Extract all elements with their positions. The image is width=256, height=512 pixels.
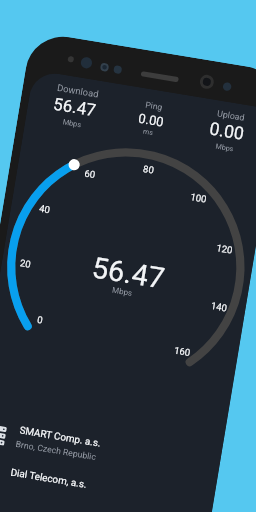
staticText: 140 <box>210 300 228 313</box>
staticText: Mbps <box>62 117 82 129</box>
staticText: 56.47 <box>52 94 97 120</box>
staticText: 56.47 <box>89 250 167 296</box>
staticText: Brno, Czech Republic <box>14 439 97 462</box>
staticText: 0.00 <box>137 111 165 130</box>
staticText: Dial Telecom, a.s. <box>10 466 87 491</box>
staticText: 0.00 <box>208 118 246 145</box>
staticText: ms <box>142 127 154 137</box>
staticText: 160 <box>173 344 191 358</box>
staticText: Mbps <box>111 286 133 298</box>
staticText: Upload <box>216 108 245 123</box>
button[interactable]: Dial Telecom, a.s. <box>0 456 203 512</box>
staticText: 40 <box>38 203 51 215</box>
button[interactable]: SMART Comp. a.s. <box>0 414 210 481</box>
staticText: 20 <box>19 257 32 270</box>
staticText: 60 <box>84 168 96 180</box>
staticText: Mbps <box>215 142 234 152</box>
staticText: Ping <box>145 100 163 112</box>
staticText: 0 <box>36 314 44 326</box>
staticText: 120 <box>215 242 234 256</box>
staticText: 100 <box>189 191 208 205</box>
staticText: SMART Comp. a.s. <box>19 424 101 450</box>
staticText: 80 <box>142 163 155 176</box>
staticText: Download <box>56 82 99 100</box>
